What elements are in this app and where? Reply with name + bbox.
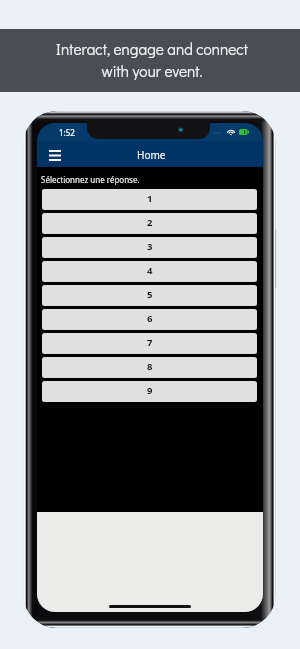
staticText: 1:52 <box>59 127 75 138</box>
staticText: 8 <box>147 360 153 373</box>
button[interactable]: Open navigation menu <box>43 143 67 167</box>
staticText: Interact, engage and connect <box>56 39 248 59</box>
staticText: 7 <box>147 336 153 349</box>
button[interactable]: 4 <box>42 261 257 282</box>
staticText: 5 <box>147 288 153 301</box>
button[interactable]: 6 <box>42 309 257 330</box>
button[interactable]: 9 <box>42 381 257 402</box>
button[interactable]: 2 <box>42 213 257 234</box>
staticText: 2 <box>147 216 153 229</box>
staticText: with your event. <box>101 61 203 81</box>
button[interactable]: 5 <box>42 285 257 306</box>
staticText: 1 <box>147 192 153 205</box>
staticText: Sélectionnez une réponse. <box>41 174 140 185</box>
staticText: Home <box>137 148 166 162</box>
button[interactable]: 8 <box>42 357 257 378</box>
staticText: 9 <box>147 384 153 397</box>
button[interactable]: 3 <box>42 237 257 258</box>
staticText: 6 <box>147 312 153 325</box>
button[interactable]: 1 <box>42 189 257 210</box>
staticText: 3 <box>147 240 153 253</box>
button[interactable]: 7 <box>42 333 257 354</box>
staticText: 4 <box>147 264 153 277</box>
